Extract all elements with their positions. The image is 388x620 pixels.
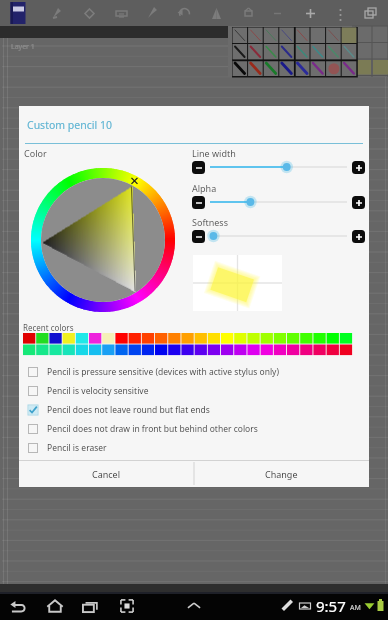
button[interactable]: Pencil is pressure sensitive (devices wi… xyxy=(22,362,372,381)
staticText: Custom pencil 10 xyxy=(27,118,112,132)
button[interactable]: Increase Alpha xyxy=(352,196,365,209)
button[interactable]: Marker xyxy=(139,0,165,26)
button[interactable]: Change xyxy=(194,460,369,487)
button[interactable]: Text xyxy=(203,0,229,26)
button[interactable]: Layers xyxy=(357,0,383,26)
button[interactable]: Home xyxy=(38,592,72,620)
staticText: AM xyxy=(350,603,361,613)
staticText: Pencil is pressure sensitive (devices wi… xyxy=(47,366,279,378)
button[interactable]: Increase Line width xyxy=(352,161,365,174)
button[interactable]: Add xyxy=(297,0,323,26)
button[interactable]: Recents xyxy=(73,592,107,620)
staticText: Softness xyxy=(192,216,228,228)
button[interactable]: Pencil is velocity sensitive xyxy=(22,381,372,400)
button[interactable]: Decrease Softness xyxy=(192,230,205,243)
staticText: Change xyxy=(265,468,298,480)
button[interactable]: Shape xyxy=(235,0,261,26)
button[interactable]: Fullscreen xyxy=(110,592,144,620)
button[interactable]: Select xyxy=(108,0,134,26)
button[interactable]: Pencil does not leave round but flat end… xyxy=(22,400,372,419)
button[interactable]: Gallery xyxy=(10,2,26,24)
button[interactable]: Undo xyxy=(171,0,197,26)
staticText: Pencil does not draw in front but behind… xyxy=(47,423,258,435)
button[interactable]: Decrease Alpha xyxy=(192,196,205,209)
button[interactable]: Brush preview xyxy=(193,255,282,311)
staticText: 9:57 xyxy=(316,596,346,616)
button[interactable]: Show toolbar xyxy=(177,592,211,620)
button[interactable]: Pencil is eraser xyxy=(22,438,372,457)
button[interactable]: Alpha slider xyxy=(205,195,352,209)
staticText: Recent colors xyxy=(23,322,74,333)
button[interactable]: Increase Softness xyxy=(352,230,365,243)
button[interactable]: Pencil xyxy=(44,0,70,26)
button[interactable]: Eraser xyxy=(76,0,102,26)
staticText: Alpha xyxy=(192,182,217,194)
staticText: Pencil does not leave round but flat end… xyxy=(47,404,210,416)
button[interactable]: Cancel xyxy=(19,460,194,487)
button[interactable]: Pencil does not draw in front but behind… xyxy=(22,419,372,438)
staticText: Cancel xyxy=(92,468,121,480)
button[interactable]: Recent colors xyxy=(23,333,353,356)
button[interactable]: Color wheel xyxy=(31,168,175,312)
button[interactable]: Decrease Line width xyxy=(192,161,205,174)
button[interactable]: Line width slider xyxy=(205,160,352,174)
button[interactable]: Back xyxy=(1,592,35,620)
staticText: Pencil is eraser xyxy=(47,442,107,454)
staticText: Pencil is velocity sensitive xyxy=(47,385,149,397)
button[interactable]: Softness slider xyxy=(205,229,352,243)
staticText: Layer 1 xyxy=(11,42,35,52)
button[interactable]: More xyxy=(327,0,353,26)
staticText: Line width xyxy=(192,147,236,159)
staticText: Color xyxy=(24,147,47,159)
